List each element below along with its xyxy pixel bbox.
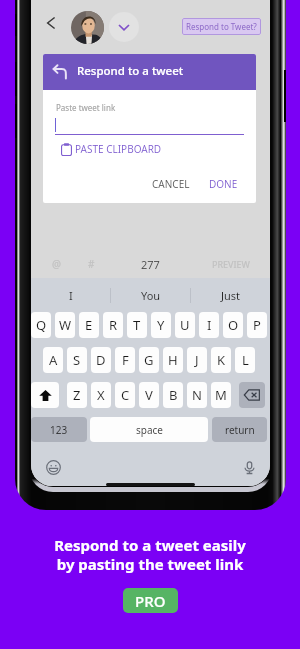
button[interactable]: X bbox=[91, 382, 111, 408]
staticText: P bbox=[253, 316, 261, 334]
button[interactable]: Emoji bbox=[44, 458, 63, 477]
staticText: G bbox=[144, 351, 154, 369]
staticText: D bbox=[96, 351, 106, 369]
staticText: L bbox=[242, 351, 249, 369]
staticText: 277 bbox=[141, 257, 160, 272]
staticText: V bbox=[145, 386, 153, 404]
button[interactable]: Expand bbox=[109, 12, 139, 42]
staticText: @ bbox=[52, 257, 61, 271]
staticText: PREVIEW bbox=[212, 258, 250, 270]
button[interactable]: H bbox=[163, 347, 183, 373]
button[interactable]: T bbox=[127, 312, 147, 338]
button[interactable]: G bbox=[139, 347, 159, 373]
staticText: Z bbox=[73, 386, 81, 404]
button[interactable]: CANCEL bbox=[148, 172, 194, 196]
button[interactable]: PREVIEW bbox=[206, 255, 256, 273]
button[interactable]: A bbox=[43, 347, 63, 373]
button[interactable]: P bbox=[247, 312, 267, 338]
button[interactable]: Microphone bbox=[242, 460, 257, 475]
staticText: F bbox=[122, 351, 129, 369]
button[interactable]: S bbox=[67, 347, 87, 373]
button[interactable]: Backspace bbox=[239, 382, 265, 408]
button[interactable]: C bbox=[115, 382, 135, 408]
staticText: K bbox=[217, 351, 226, 369]
button[interactable]: You bbox=[111, 281, 190, 309]
staticText: Respond to a tweet easily by pasting the… bbox=[54, 535, 246, 574]
button[interactable]: 123 bbox=[31, 417, 87, 442]
staticText: R bbox=[109, 316, 118, 334]
button[interactable]: Shift bbox=[31, 382, 59, 408]
staticText: You bbox=[141, 288, 161, 303]
button[interactable]: K bbox=[211, 347, 231, 373]
button[interactable]: N bbox=[187, 382, 207, 408]
staticText: W bbox=[59, 316, 72, 334]
button[interactable]: D bbox=[91, 347, 111, 373]
staticText: X bbox=[97, 386, 105, 404]
button[interactable]: PASTE CLIPBOARD bbox=[60, 142, 166, 156]
staticText: T bbox=[133, 316, 141, 334]
button[interactable]: Q bbox=[31, 312, 51, 338]
staticText: 123 bbox=[50, 423, 68, 437]
staticText: space bbox=[136, 423, 163, 437]
button[interactable]: J bbox=[187, 347, 207, 373]
staticText: Q bbox=[36, 316, 47, 334]
button[interactable]: Mention bbox=[48, 256, 64, 272]
button[interactable]: Back bbox=[40, 12, 62, 34]
button[interactable]: I bbox=[31, 281, 110, 309]
staticText: # bbox=[88, 257, 95, 271]
button[interactable]: Just bbox=[191, 281, 270, 309]
button[interactable]: DONE bbox=[205, 172, 242, 196]
staticText: PASTE CLIPBOARD bbox=[75, 142, 162, 156]
staticText: J bbox=[195, 351, 199, 369]
staticText: return bbox=[225, 423, 255, 437]
staticText: N bbox=[192, 386, 202, 404]
staticText: I bbox=[69, 288, 73, 303]
staticText: Just bbox=[221, 288, 241, 303]
staticText: Respond to Tweet? bbox=[186, 21, 257, 32]
button[interactable]: Z bbox=[67, 382, 87, 408]
staticText: C bbox=[121, 386, 130, 404]
button[interactable]: space bbox=[90, 417, 208, 442]
staticText: Y bbox=[157, 316, 165, 334]
staticText: O bbox=[228, 316, 239, 334]
button[interactable]: R bbox=[103, 312, 123, 338]
button[interactable]: Hashtag bbox=[83, 256, 99, 272]
button[interactable]: return bbox=[212, 417, 267, 442]
button[interactable]: B bbox=[163, 382, 183, 408]
staticText: DONE bbox=[209, 177, 238, 191]
staticText: Respond to a tweet bbox=[77, 63, 184, 79]
staticText: S bbox=[73, 351, 81, 369]
staticText: A bbox=[49, 351, 58, 369]
button[interactable]: F bbox=[115, 347, 135, 373]
button[interactable]: M bbox=[211, 382, 231, 408]
staticText: Paste tweet link bbox=[56, 102, 116, 113]
button[interactable]: PRO bbox=[123, 588, 178, 613]
staticText: PRO bbox=[135, 591, 166, 611]
staticText: M bbox=[215, 386, 227, 404]
button[interactable]: Respond to Tweet? bbox=[182, 18, 261, 35]
button[interactable]: V bbox=[139, 382, 159, 408]
button[interactable]: O bbox=[223, 312, 243, 338]
staticText: CANCEL bbox=[152, 177, 190, 191]
button[interactable]: W bbox=[55, 312, 75, 338]
button[interactable]: I bbox=[199, 312, 219, 338]
button[interactable]: L bbox=[235, 347, 255, 373]
button[interactable]: Y bbox=[151, 312, 171, 338]
button[interactable]: U bbox=[175, 312, 195, 338]
staticText: H bbox=[168, 351, 178, 369]
button[interactable]: E bbox=[79, 312, 99, 338]
staticText: I bbox=[207, 316, 212, 334]
staticText: E bbox=[85, 316, 93, 334]
staticText: B bbox=[169, 386, 178, 404]
staticText: U bbox=[180, 316, 190, 334]
